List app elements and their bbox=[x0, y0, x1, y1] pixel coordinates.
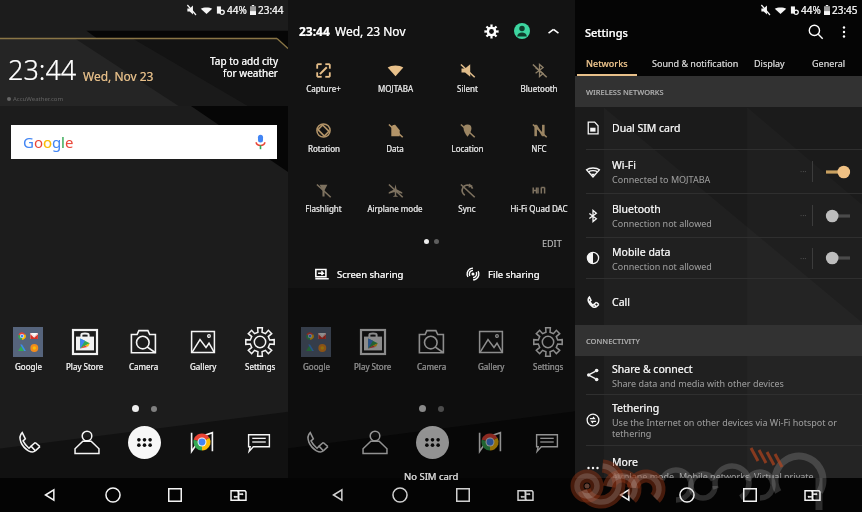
button[interactable]: Location bbox=[431, 117, 503, 157]
button[interactable]: More options bbox=[832, 20, 856, 44]
staticText: Play Store bbox=[354, 361, 392, 372]
staticText: Share & connect bbox=[612, 362, 693, 376]
staticText: Connection not allowed bbox=[612, 260, 712, 272]
staticText: l bbox=[61, 132, 65, 152]
staticText: Dual SIM card bbox=[612, 121, 681, 135]
button[interactable]: Google bbox=[289, 327, 343, 372]
button[interactable]: Sync bbox=[431, 177, 503, 217]
button[interactable]: Wi-Fi bbox=[575, 150, 862, 193]
staticText: Sync bbox=[458, 203, 476, 214]
button[interactable]: Phone bbox=[15, 428, 43, 456]
button[interactable]: Bluetooth bbox=[575, 194, 862, 237]
staticText: 23:44 bbox=[258, 3, 284, 17]
button[interactable]: Dual window bbox=[799, 482, 825, 508]
button[interactable]: Messages bbox=[533, 428, 561, 456]
staticText: Silent bbox=[457, 83, 478, 94]
button[interactable]: Share & connect bbox=[575, 356, 862, 394]
button[interactable]: Messages bbox=[245, 428, 273, 456]
button[interactable]: Play Store bbox=[346, 327, 400, 372]
staticText: 44% bbox=[227, 3, 247, 17]
button[interactable]: NFC bbox=[503, 117, 575, 157]
button[interactable]: Airplane mode bbox=[359, 177, 431, 217]
button[interactable]: G bbox=[11, 125, 277, 159]
button[interactable]: Flashlight bbox=[288, 177, 359, 217]
staticText: Settings bbox=[245, 361, 276, 372]
staticText: Play Store bbox=[66, 361, 104, 372]
button[interactable]: Settings bbox=[480, 20, 502, 42]
button[interactable]: Mobile data bbox=[575, 238, 862, 278]
button[interactable]: Rotation bbox=[288, 117, 359, 157]
button[interactable]: More bbox=[575, 446, 862, 490]
button[interactable]: Search bbox=[804, 20, 828, 44]
button[interactable]: User bbox=[511, 20, 533, 42]
button[interactable]: Hi-Fi Quad DAC bbox=[503, 177, 575, 217]
staticText: Wed, Nov 23 bbox=[83, 68, 154, 84]
staticText: MOJTABA bbox=[378, 83, 413, 94]
staticText: Location bbox=[451, 143, 484, 154]
button[interactable]: Contacts bbox=[73, 428, 101, 456]
button[interactable] bbox=[826, 208, 850, 224]
staticText: Sound & notification bbox=[652, 57, 739, 69]
button[interactable]: Back bbox=[37, 482, 63, 508]
button[interactable]: Camera bbox=[405, 327, 459, 372]
button[interactable]: Silent bbox=[431, 57, 503, 97]
button[interactable]: Recents bbox=[162, 482, 188, 508]
button[interactable]: Dual window bbox=[225, 482, 251, 508]
button[interactable]: Collapse bbox=[542, 20, 564, 42]
button[interactable]: Home bbox=[387, 482, 413, 508]
button[interactable]: Home bbox=[100, 482, 126, 508]
button[interactable]: Dual window bbox=[512, 482, 538, 508]
button[interactable]: Camera bbox=[117, 327, 171, 372]
button[interactable]: Screen sharing bbox=[288, 262, 431, 286]
staticText: File sharing bbox=[488, 268, 540, 281]
staticText: WIRELESS NETWORKS bbox=[586, 87, 664, 97]
staticText: NFC bbox=[531, 143, 547, 154]
button[interactable]: File sharing bbox=[431, 262, 575, 286]
staticText: Google bbox=[15, 361, 42, 372]
button[interactable]: Recents bbox=[737, 482, 763, 508]
button[interactable] bbox=[826, 250, 850, 266]
button[interactable]: Recents bbox=[450, 482, 476, 508]
button[interactable]: Sound & notification bbox=[651, 50, 739, 76]
button[interactable]: All apps bbox=[128, 426, 161, 459]
button[interactable]: Bluetooth bbox=[503, 57, 575, 97]
button[interactable]: MOJTABA bbox=[359, 57, 431, 97]
button[interactable]: Settings bbox=[521, 327, 575, 372]
staticText: 23:45 bbox=[832, 3, 858, 17]
button[interactable]: Phone bbox=[303, 428, 331, 456]
button[interactable]: Tethering bbox=[575, 395, 862, 445]
button[interactable]: General bbox=[807, 50, 851, 76]
button[interactable]: Play Store bbox=[58, 327, 112, 372]
button[interactable]: Back bbox=[612, 482, 638, 508]
staticText: ··· bbox=[800, 166, 807, 177]
button[interactable]: Call bbox=[575, 279, 862, 325]
button[interactable]: EDIT bbox=[542, 237, 562, 249]
button[interactable]: Google bbox=[1, 327, 55, 372]
button[interactable] bbox=[826, 164, 850, 180]
button[interactable]: Networks bbox=[577, 50, 637, 76]
button[interactable]: Gallery bbox=[176, 327, 230, 372]
button[interactable]: All apps bbox=[416, 426, 449, 459]
staticText: Data bbox=[386, 143, 404, 154]
staticText: Gallery bbox=[478, 361, 505, 372]
staticText: ··· bbox=[800, 210, 807, 221]
staticText: g bbox=[52, 132, 61, 152]
button[interactable]: Gallery bbox=[464, 327, 518, 372]
button[interactable]: Back bbox=[325, 482, 351, 508]
staticText: Rotation bbox=[308, 143, 340, 154]
button[interactable]: Contacts bbox=[361, 428, 389, 456]
staticText: Capture+ bbox=[306, 83, 341, 94]
staticText: Mobile data bbox=[612, 245, 671, 259]
button[interactable]: Dual SIM card bbox=[575, 107, 862, 149]
button[interactable]: Settings bbox=[233, 327, 287, 372]
button[interactable]: Chrome bbox=[188, 428, 216, 456]
button[interactable]: Chrome bbox=[476, 428, 504, 456]
button[interactable]: Data bbox=[359, 117, 431, 157]
button[interactable]: Capture+ bbox=[288, 57, 359, 97]
staticText: More bbox=[612, 455, 638, 469]
staticText: G bbox=[23, 132, 34, 152]
button[interactable]: Display bbox=[746, 50, 793, 76]
staticText: Wed, 23 Nov bbox=[335, 23, 406, 39]
button[interactable]: Home bbox=[674, 482, 700, 508]
staticText: Display bbox=[754, 57, 785, 69]
